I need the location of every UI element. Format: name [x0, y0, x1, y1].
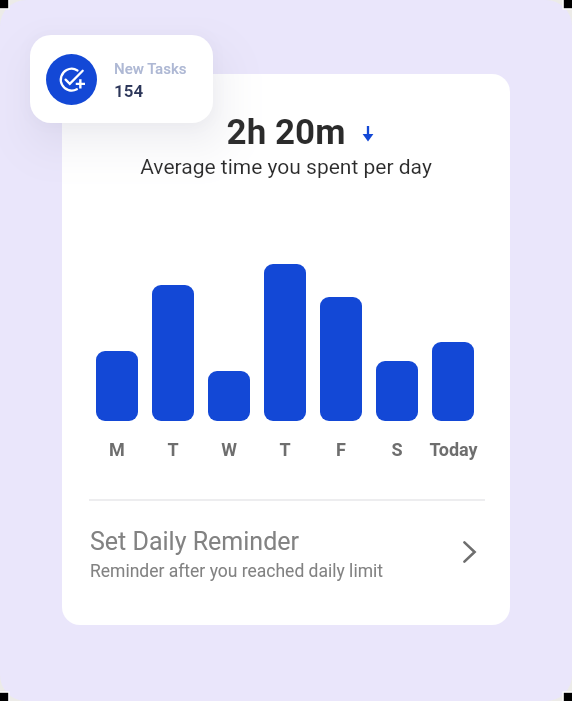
staticText: Average time you spent per day	[62, 155, 510, 180]
staticText: T	[167, 439, 179, 460]
button[interactable]: New Tasks	[30, 35, 213, 123]
staticText: Reminder after you reached daily limit	[90, 561, 383, 582]
staticText: M	[109, 439, 125, 460]
other: Open daily reminder settings	[463, 541, 476, 563]
staticText: New Tasks	[114, 60, 187, 78]
staticText: Set Daily Reminder	[90, 527, 299, 556]
staticText: Today	[429, 439, 478, 460]
staticText: F	[336, 439, 346, 460]
button[interactable]: Set Daily Reminder	[62, 502, 510, 607]
staticText: T	[279, 439, 291, 460]
staticText: S	[391, 439, 403, 460]
staticText: W	[221, 439, 237, 460]
staticText: 154	[114, 81, 144, 101]
staticText: 2h 20m	[62, 112, 510, 153]
